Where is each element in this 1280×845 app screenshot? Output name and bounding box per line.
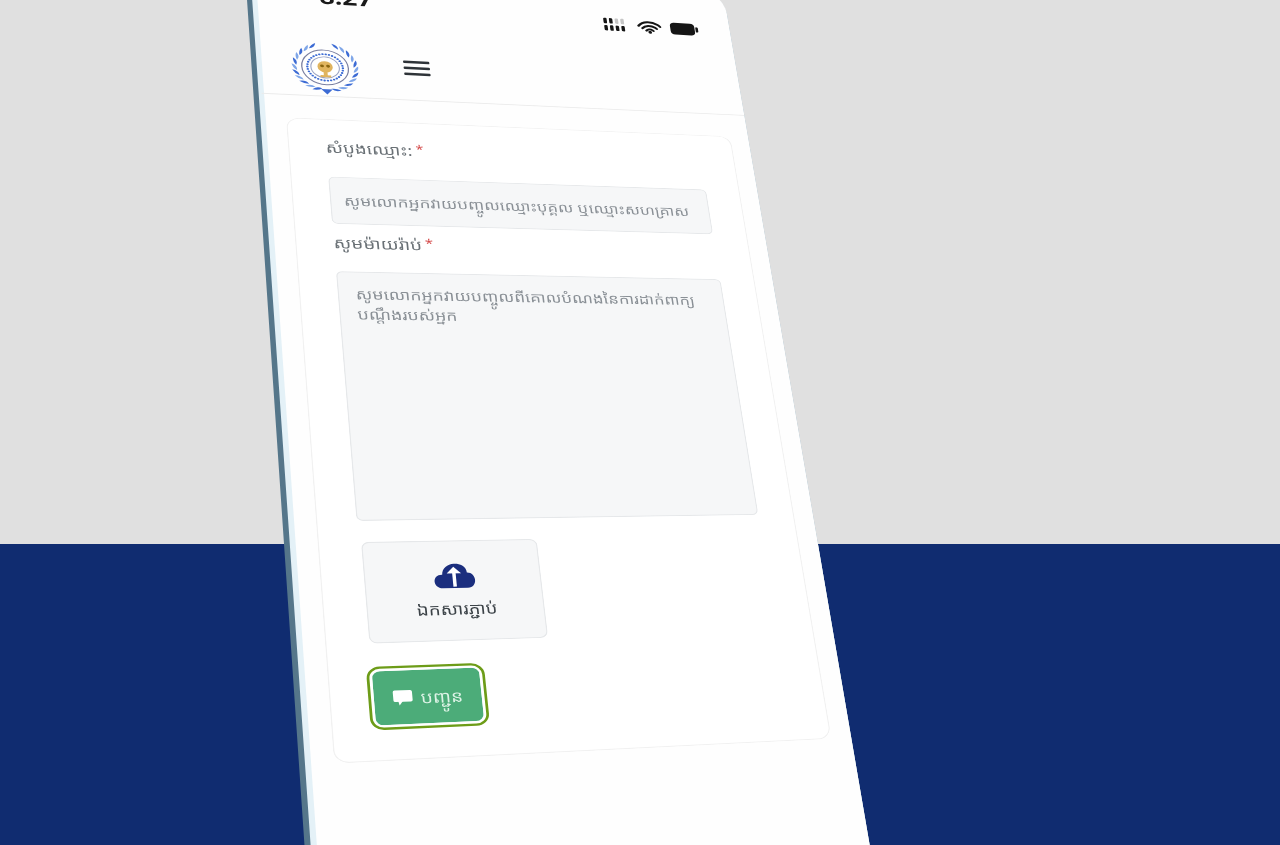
staticText: សូមលោកអ្នកវាយបញ្ចូលពីគោលបំណងនៃការដាក់ពាក… bbox=[62, 331, 352, 370]
button[interactable]: សូមលោកអ្នកវាយបញ្ចូលពីគោលបំណងនៃការដាក់ពាក… bbox=[48, 318, 366, 557]
staticText: សូមលោកអ្នកវាយបញ្ចូលឈ្មោះបុគ្គល ឬឈ្មោះសហគ… bbox=[59, 236, 348, 255]
button[interactable]: សូមលោកអ្នកវាយបញ្ចូលឈ្មោះបុគ្គល ឬឈ្មោះសហគ… bbox=[48, 221, 366, 270]
